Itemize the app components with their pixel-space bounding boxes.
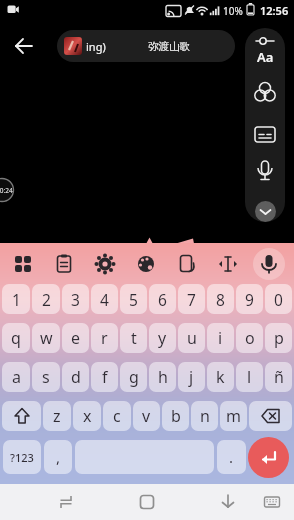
button[interactable] bbox=[249, 401, 292, 431]
staticText: w bbox=[40, 327, 53, 349]
staticText: m bbox=[226, 405, 241, 427]
staticText: x bbox=[83, 405, 92, 427]
button[interactable] bbox=[75, 440, 214, 474]
staticText: j bbox=[189, 366, 194, 388]
staticText: t bbox=[131, 327, 137, 349]
button[interactable]: u bbox=[178, 323, 205, 353]
button[interactable]: e bbox=[62, 323, 89, 353]
button[interactable]: 7 bbox=[178, 284, 205, 314]
staticText: ?123 bbox=[10, 450, 34, 465]
button[interactable]: r bbox=[91, 323, 118, 353]
button[interactable]: ñ bbox=[265, 362, 292, 392]
staticText: y bbox=[158, 327, 167, 349]
button[interactable] bbox=[166, 243, 207, 284]
button[interactable]: 5 bbox=[120, 284, 147, 314]
button[interactable]: ing) bbox=[57, 30, 235, 62]
staticText: g bbox=[129, 366, 139, 388]
staticText: o bbox=[245, 327, 255, 349]
button[interactable]: n bbox=[191, 401, 218, 431]
button[interactable] bbox=[43, 243, 84, 284]
button[interactable] bbox=[245, 117, 285, 153]
staticText: a bbox=[12, 366, 21, 388]
button[interactable] bbox=[212, 486, 244, 518]
button[interactable] bbox=[245, 76, 285, 112]
button[interactable] bbox=[125, 243, 166, 284]
button[interactable]: g bbox=[120, 362, 147, 392]
button[interactable]: b bbox=[162, 401, 189, 431]
button[interactable]: p bbox=[265, 323, 292, 353]
staticText: n bbox=[200, 405, 210, 427]
button[interactable]: q bbox=[2, 323, 30, 353]
staticText: z bbox=[53, 405, 61, 427]
button[interactable]: 4 bbox=[91, 284, 118, 314]
staticText: 弥渡山歌 bbox=[148, 40, 190, 53]
button[interactable] bbox=[84, 243, 125, 284]
button[interactable]: t bbox=[120, 323, 147, 353]
button[interactable] bbox=[207, 243, 248, 284]
button[interactable]: , bbox=[44, 440, 72, 474]
staticText: i bbox=[218, 327, 223, 349]
button[interactable]: c bbox=[103, 401, 131, 431]
staticText: s bbox=[42, 366, 50, 388]
staticText: f bbox=[102, 366, 108, 388]
button[interactable]: f bbox=[91, 362, 118, 392]
staticText: u bbox=[187, 327, 197, 349]
staticText: q bbox=[11, 327, 21, 349]
button[interactable]: 0 bbox=[265, 284, 292, 314]
button[interactable]: 2 bbox=[32, 284, 60, 314]
button[interactable]: a bbox=[2, 362, 30, 392]
button[interactable]: y bbox=[149, 323, 176, 353]
staticText: p bbox=[274, 327, 284, 349]
staticText: e bbox=[71, 327, 81, 349]
button[interactable]: . bbox=[217, 440, 246, 474]
staticText: b bbox=[171, 405, 181, 427]
staticText: 5 bbox=[129, 289, 138, 310]
button[interactable] bbox=[2, 401, 41, 431]
button[interactable]: i bbox=[207, 323, 234, 353]
staticText: k bbox=[216, 366, 225, 388]
button[interactable] bbox=[248, 243, 289, 284]
button[interactable]: x bbox=[73, 401, 101, 431]
button[interactable]: 3 bbox=[62, 284, 89, 314]
button[interactable]: l bbox=[236, 362, 263, 392]
button[interactable]: h bbox=[149, 362, 176, 392]
button[interactable]: ?123 bbox=[3, 440, 41, 474]
staticText: , bbox=[56, 447, 61, 467]
staticText: 4 bbox=[100, 289, 109, 310]
staticText: 8 bbox=[216, 289, 225, 310]
button[interactable]: m bbox=[220, 401, 247, 431]
button[interactable]: z bbox=[43, 401, 71, 431]
button[interactable]: w bbox=[32, 323, 60, 353]
button[interactable] bbox=[10, 32, 38, 60]
staticText: 00:24 bbox=[0, 186, 13, 195]
button[interactable]: o bbox=[236, 323, 263, 353]
staticText: ñ bbox=[274, 366, 284, 388]
button[interactable]: k bbox=[207, 362, 234, 392]
button[interactable]: d bbox=[62, 362, 89, 392]
staticText: Aa bbox=[257, 48, 274, 66]
button[interactable]: 1 bbox=[2, 284, 30, 314]
button[interactable]: v bbox=[133, 401, 160, 431]
button[interactable]: 9 bbox=[236, 284, 263, 314]
button[interactable] bbox=[245, 155, 285, 191]
button[interactable]: 8 bbox=[207, 284, 234, 314]
staticText: 12:56 bbox=[260, 3, 289, 18]
button[interactable] bbox=[258, 488, 286, 516]
button[interactable]: s bbox=[32, 362, 60, 392]
button[interactable]: 6 bbox=[149, 284, 176, 314]
staticText: d bbox=[71, 366, 81, 388]
staticText: 10% bbox=[223, 4, 243, 18]
button[interactable] bbox=[131, 486, 163, 518]
button[interactable] bbox=[255, 201, 276, 222]
button[interactable]: j bbox=[178, 362, 205, 392]
button[interactable] bbox=[2, 243, 43, 284]
staticText: 1 bbox=[12, 289, 21, 310]
button[interactable]: Aa bbox=[245, 32, 285, 74]
button[interactable] bbox=[50, 486, 82, 518]
staticText: 7 bbox=[187, 289, 196, 310]
staticText: 9 bbox=[245, 289, 254, 310]
staticText: l bbox=[247, 366, 252, 388]
button[interactable] bbox=[248, 437, 289, 478]
staticText: v bbox=[142, 405, 151, 427]
staticText: 6 bbox=[158, 289, 167, 310]
